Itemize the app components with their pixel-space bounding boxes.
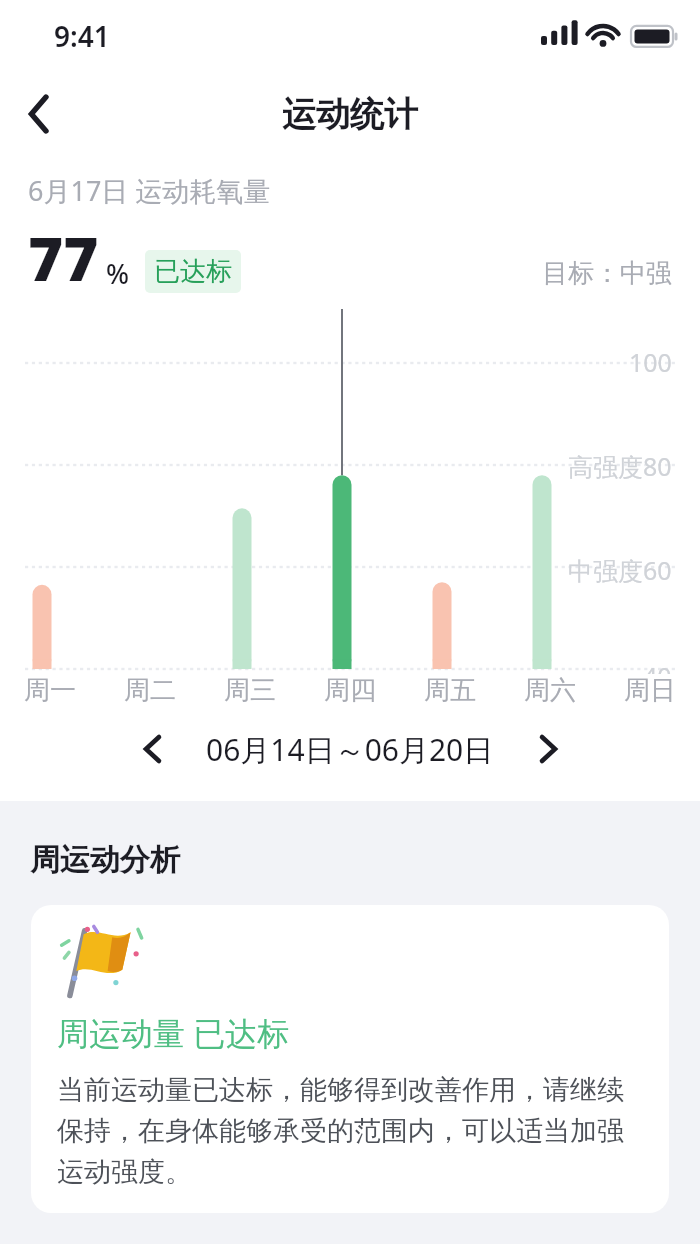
staticText: 6月17日 运动耗氧量 — [28, 172, 271, 209]
staticText: 周五 — [424, 674, 476, 707]
button[interactable]: Back — [0, 75, 78, 153]
staticText: 9:41 — [54, 17, 110, 55]
staticText: 100 — [629, 345, 672, 379]
staticText: 高强度80 — [568, 449, 672, 483]
button[interactable]: Next week — [520, 721, 576, 777]
staticText: 目标：中强 — [542, 257, 672, 290]
staticText: 77 — [28, 217, 99, 299]
button[interactable]: 已达标 — [145, 250, 241, 293]
staticText: % — [106, 255, 130, 292]
staticText: 周二 — [124, 674, 176, 707]
staticText: 周运动量 已达标 — [57, 1011, 290, 1055]
button[interactable]: 06月14日～06月20日 — [206, 729, 494, 770]
staticText: 周四 — [324, 674, 376, 707]
staticText: 中强度60 — [568, 553, 672, 587]
staticText: 已达标 — [154, 255, 232, 288]
staticText: 周三 — [224, 674, 276, 707]
button[interactable]: 周运动量 已达标 — [31, 905, 669, 1213]
button[interactable]: Previous week — [124, 721, 180, 777]
staticText: 周日 — [624, 674, 676, 707]
staticText: 周六 — [524, 674, 576, 707]
staticText: 周一 — [24, 674, 76, 707]
staticText: 当前运动量已达标，能够得到改善作用，请继续保持，在身体能够承受的范围内，可以适当… — [57, 1073, 643, 1189]
staticText: 周运动分析 — [30, 841, 180, 879]
staticText: 运动统计 — [282, 93, 418, 136]
staticText: 40 — [643, 659, 672, 674]
